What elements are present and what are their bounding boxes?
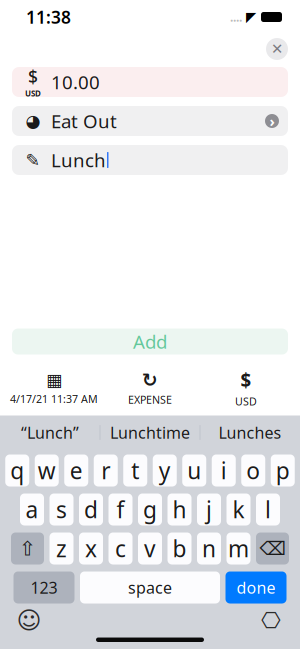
staticText: c xyxy=(115,533,126,563)
button[interactable]: j xyxy=(197,493,221,525)
button[interactable]: k xyxy=(226,493,250,525)
button[interactable]: h xyxy=(167,493,191,525)
staticText: v xyxy=(144,533,156,563)
staticText: k xyxy=(232,494,244,524)
button[interactable]: Done xyxy=(225,571,286,603)
staticText: g xyxy=(143,494,157,524)
staticText: o xyxy=(246,455,260,485)
button[interactable]: u xyxy=(182,454,206,486)
button[interactable]: v xyxy=(138,532,162,564)
button[interactable]: g xyxy=(138,493,162,525)
button[interactable]: Delete xyxy=(256,532,289,564)
button[interactable]: l xyxy=(256,493,280,525)
button[interactable]: Shift xyxy=(11,532,44,564)
staticText: x xyxy=(85,533,97,563)
staticText: ✎ xyxy=(25,150,40,170)
staticText: r xyxy=(101,455,110,485)
staticText: ◕ xyxy=(25,111,40,131)
staticText: .... xyxy=(230,9,242,25)
button[interactable]: Close xyxy=(262,34,292,64)
button[interactable]: ↻ xyxy=(102,369,198,407)
button[interactable]: t xyxy=(123,454,147,486)
staticText: u xyxy=(187,455,201,485)
staticText: done xyxy=(236,577,275,598)
staticText: Lunch xyxy=(51,148,106,172)
button[interactable]: $ xyxy=(198,367,294,408)
button[interactable]: z xyxy=(49,532,73,564)
staticText: m xyxy=(228,533,249,563)
staticText: ⎔ xyxy=(261,608,281,633)
button[interactable]: Lunches xyxy=(200,416,299,449)
staticText: ⇧ xyxy=(19,537,36,560)
button[interactable]: ✎ xyxy=(12,145,288,175)
staticText: s xyxy=(56,494,67,524)
staticText: “Lunch” xyxy=(21,422,79,443)
button[interactable]: f xyxy=(108,493,132,525)
staticText: ✕ xyxy=(271,41,283,57)
button[interactable]: x xyxy=(79,532,103,564)
staticText: Lunches xyxy=(218,422,281,443)
staticText: USD xyxy=(235,394,257,408)
button[interactable]: ▦ xyxy=(6,370,102,406)
staticText: p xyxy=(276,455,290,485)
button[interactable]: “Lunch” xyxy=(0,416,99,449)
button[interactable]: Emoji xyxy=(12,607,46,633)
staticText: f xyxy=(116,494,124,524)
staticText: ▦ xyxy=(46,370,62,390)
staticText: ◤ xyxy=(246,9,256,24)
button[interactable]: Dictation xyxy=(254,607,288,633)
staticText: Add xyxy=(133,329,167,354)
button[interactable]: i xyxy=(212,454,236,486)
button[interactable]: o xyxy=(241,454,265,486)
button[interactable]: p xyxy=(271,454,295,486)
button[interactable]: d xyxy=(79,493,103,525)
button[interactable]: Space xyxy=(80,571,220,603)
button[interactable]: b xyxy=(167,532,191,564)
staticText: n xyxy=(202,533,216,563)
button[interactable]: e xyxy=(64,454,88,486)
staticText: y xyxy=(159,455,171,485)
staticText: 10.00 xyxy=(51,70,100,94)
button[interactable]: Numbers xyxy=(13,571,74,603)
staticText: ⌫ xyxy=(259,538,285,559)
button[interactable]: w xyxy=(35,454,59,486)
staticText: e xyxy=(70,455,83,485)
staticText: l xyxy=(265,494,271,524)
staticText: › xyxy=(269,111,274,131)
staticText: d xyxy=(84,494,98,524)
button[interactable]: $ xyxy=(12,67,288,97)
button[interactable]: a xyxy=(20,493,44,525)
button[interactable]: n xyxy=(197,532,221,564)
staticText: space xyxy=(128,577,172,598)
staticText: EXPENSE xyxy=(128,392,172,407)
staticText: ↻ xyxy=(142,369,158,390)
staticText: q xyxy=(10,455,24,485)
button[interactable]: ◕ xyxy=(12,106,288,136)
staticText: z xyxy=(56,533,67,563)
staticText: Eat Out xyxy=(51,109,117,133)
button[interactable]: s xyxy=(49,493,73,525)
button[interactable]: c xyxy=(108,532,132,564)
staticText: i xyxy=(221,455,227,485)
button[interactable]: r xyxy=(94,454,118,486)
button[interactable]: m xyxy=(226,532,250,564)
staticText: j xyxy=(206,494,212,524)
staticText: 123 xyxy=(30,577,57,598)
button[interactable]: y xyxy=(153,454,177,486)
staticText: $ xyxy=(240,367,251,392)
staticText: ☺ xyxy=(16,607,41,634)
staticText: w xyxy=(38,455,56,485)
staticText: USD xyxy=(25,88,41,99)
staticText: t xyxy=(131,455,139,485)
button[interactable]: Lunchtime xyxy=(100,416,199,449)
staticText: 4/17/21 11:37 AM xyxy=(10,392,98,406)
button[interactable]: Add xyxy=(12,328,288,354)
staticText: b xyxy=(172,533,186,563)
staticText: h xyxy=(172,494,186,524)
staticText: $ xyxy=(28,65,38,88)
staticText: Lunchtime xyxy=(110,422,190,443)
staticText: a xyxy=(25,494,38,524)
staticText: 11:38 xyxy=(26,5,71,28)
button[interactable]: q xyxy=(5,454,29,486)
